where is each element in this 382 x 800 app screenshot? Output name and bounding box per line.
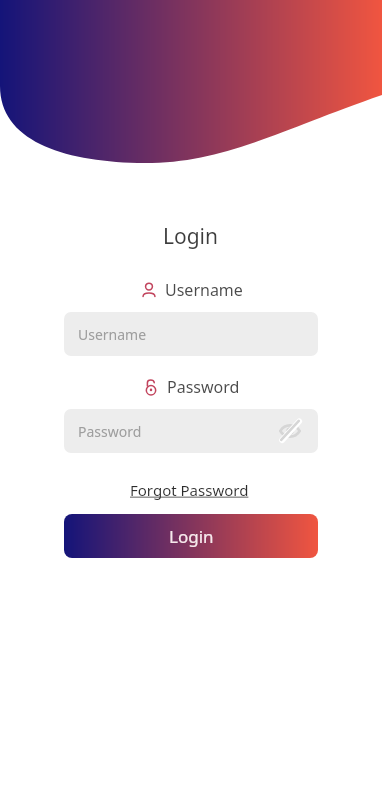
staticText: Forgot Password [130,480,253,500]
staticText: Login [163,222,219,251]
button[interactable]: Toggle password visibility [276,417,304,445]
button[interactable]: Password [64,409,318,453]
staticText: Username [78,325,147,344]
button[interactable]: Login [64,514,318,558]
staticText: Password [167,376,240,398]
staticText: Password [78,422,142,441]
staticText: Login [169,525,214,548]
button[interactable]: Username [64,312,318,356]
staticText: Username [165,279,243,301]
button[interactable]: Forgot Password [126,478,257,502]
